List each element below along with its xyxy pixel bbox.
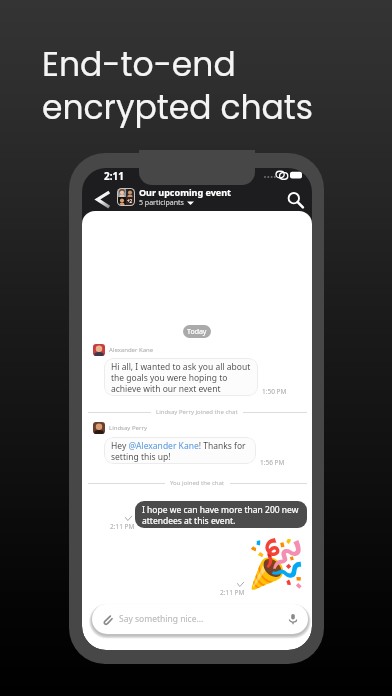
staticText: End-to-end encrypted chats xyxy=(42,41,314,130)
staticText: 5 participants xyxy=(139,198,184,208)
staticText: Alexander Kane xyxy=(109,346,154,354)
staticText: Lindsay Perry joined the chat xyxy=(156,408,238,416)
staticText: 1:56 PM xyxy=(260,458,285,467)
staticText: 2:11 xyxy=(104,169,124,183)
staticText: Hey @Alexander Kane! Thanks for setting … xyxy=(111,440,249,462)
staticText: 1:50 PM xyxy=(262,387,287,396)
staticText: Hi all, I wanted to ask you all about th… xyxy=(111,361,251,394)
staticText: Today xyxy=(187,327,207,337)
staticText: Say something nice... xyxy=(119,613,204,625)
button[interactable]: Search xyxy=(283,188,303,208)
button[interactable]: Say something nice... xyxy=(92,604,308,634)
staticText: You joined the chat xyxy=(170,479,225,487)
staticText: 🎉 xyxy=(247,536,306,591)
staticText: 2:11 PM xyxy=(220,588,245,597)
staticText: Our upcoming event xyxy=(139,186,231,198)
staticText: +2 xyxy=(127,198,133,204)
button[interactable]: Back xyxy=(89,188,111,210)
staticText: Lindsay Perry xyxy=(109,424,147,432)
staticText: 2:11 PM xyxy=(110,522,135,531)
staticText: I hope we can have more than 200 new att… xyxy=(142,504,300,526)
